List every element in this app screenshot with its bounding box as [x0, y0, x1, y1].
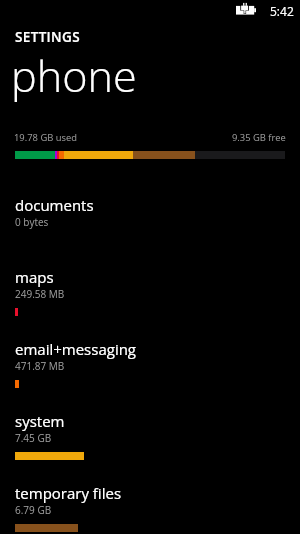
staticText: phone	[11, 46, 137, 105]
staticText: 19.78 GB used	[14, 131, 77, 144]
staticText: SETTINGS	[15, 28, 80, 46]
staticText: temporary files	[15, 483, 122, 503]
other: Battery charging	[234, 1, 258, 17]
staticText: 6.79 GB	[15, 503, 52, 517]
staticText: 249.58 MB	[15, 287, 65, 301]
staticText: 7.45 GB	[15, 431, 52, 445]
staticText: 5:42	[270, 3, 294, 19]
staticText: 9.35 GB free	[232, 131, 286, 144]
button[interactable]: email+messaging	[0, 337, 300, 409]
staticText: 471.87 MB	[15, 359, 65, 373]
staticText: documents	[15, 195, 94, 215]
button[interactable]: system	[0, 409, 300, 481]
staticText: 0 bytes	[15, 215, 49, 229]
button[interactable]: temporary files	[0, 481, 300, 534]
staticText: system	[15, 411, 65, 431]
staticText: email+messaging	[15, 339, 137, 359]
button[interactable]: maps	[0, 265, 300, 337]
staticText: maps	[15, 267, 54, 287]
button[interactable]: documents	[0, 193, 300, 265]
